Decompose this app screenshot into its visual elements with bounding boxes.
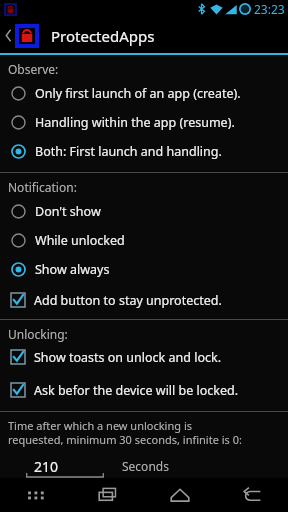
button[interactable]: Only first launch of an app (create). xyxy=(0,79,288,108)
staticText: While unlocked xyxy=(35,232,125,249)
button[interactable]: 210 xyxy=(26,454,104,478)
button[interactable]: Add button to stay unprotected. xyxy=(0,287,288,313)
button[interactable]: Don't show xyxy=(0,197,288,226)
staticText: Only first launch of an app (create). xyxy=(35,85,241,102)
button[interactable]: Home xyxy=(144,478,216,512)
staticText: Seconds xyxy=(122,458,169,474)
button[interactable]: Show always xyxy=(0,255,288,284)
button[interactable]: Menu xyxy=(0,478,72,512)
staticText: Unlocking: xyxy=(8,326,68,342)
button[interactable]: Both: First launch and handling. xyxy=(0,137,288,166)
button[interactable]: Back xyxy=(216,478,288,512)
staticText: Both: First launch and handling. xyxy=(35,143,222,160)
staticText: Notification: xyxy=(8,179,77,195)
staticText: ProtectedApps xyxy=(51,26,155,46)
staticText: 23:23 xyxy=(254,1,285,17)
staticText: Observe: xyxy=(8,61,59,77)
staticText: 210 xyxy=(34,457,59,476)
button[interactable]: Handling within the app (resume). xyxy=(0,108,288,137)
button[interactable]: While unlocked xyxy=(0,226,288,255)
staticText: Handling within the app (resume). xyxy=(35,114,235,131)
staticText: Ask befor the device will be locked. xyxy=(34,382,239,399)
staticText: Time after which a new unlocking is requ… xyxy=(8,418,242,447)
staticText: Add button to stay unprotected. xyxy=(34,292,222,309)
staticText: Show toasts on unlock and lock. xyxy=(34,349,221,366)
button[interactable]: Ask befor the device will be locked. xyxy=(0,377,288,403)
button[interactable]: Recent apps xyxy=(72,478,144,512)
staticText: Don't show xyxy=(35,203,101,220)
button[interactable]: Navigate up xyxy=(0,18,43,53)
staticText: Show always xyxy=(35,261,110,278)
button[interactable]: Show toasts on unlock and lock. xyxy=(0,344,288,370)
